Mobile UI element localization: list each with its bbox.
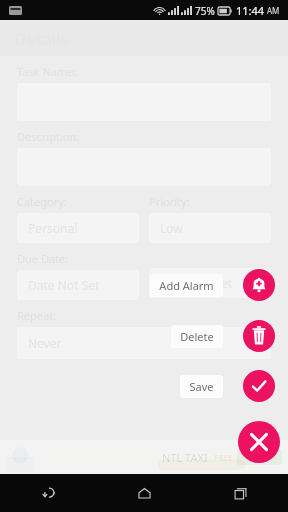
button[interactable]: Time Not Set xyxy=(149,268,271,298)
button[interactable]: Close menu xyxy=(238,421,280,463)
staticText: NTL TAXI xyxy=(162,450,208,465)
staticText: Personal xyxy=(28,220,78,236)
staticText: 75% xyxy=(195,4,215,18)
staticText: FREE xyxy=(214,452,233,463)
staticText: Delete xyxy=(180,329,214,344)
button[interactable]: Never xyxy=(17,327,271,359)
button[interactable]: Date Not Set xyxy=(17,270,139,300)
staticText: Priority: xyxy=(149,194,190,209)
staticText: Repeat: xyxy=(17,308,57,323)
staticText: Add Alarm xyxy=(159,278,214,293)
button[interactable]: Delete xyxy=(171,325,223,348)
staticText: Category: xyxy=(17,194,67,209)
button[interactable]: Save xyxy=(243,370,275,402)
staticText: Description: xyxy=(17,129,80,144)
button[interactable]: NTL TAXI xyxy=(0,440,288,474)
button[interactable]: Add Alarm xyxy=(243,269,275,301)
staticText: Due Date: xyxy=(17,251,69,266)
staticText: Task Name: xyxy=(17,64,77,79)
button[interactable]: Home xyxy=(96,474,192,512)
staticText: Low xyxy=(160,220,183,236)
button[interactable]: Delete xyxy=(243,320,275,352)
button[interactable]: Recent apps xyxy=(192,474,288,512)
button[interactable]: Save xyxy=(180,375,223,398)
button[interactable]: Back xyxy=(0,474,96,512)
button[interactable]: Add Alarm xyxy=(150,274,223,297)
staticText: Date Not Set xyxy=(28,277,100,293)
staticText: Never xyxy=(28,335,62,351)
staticText: INSTALL xyxy=(243,452,276,463)
staticText: Time Not Set xyxy=(160,275,233,291)
staticText: Save xyxy=(189,379,214,394)
staticText: 11:44 xyxy=(236,3,265,18)
staticText: AM xyxy=(267,5,280,16)
